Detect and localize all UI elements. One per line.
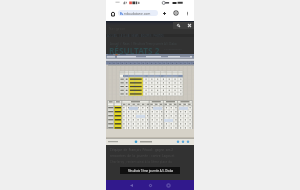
- staticText: L'équipe de François Péaud : gagne ses 2: [110, 148, 173, 152]
- button[interactable]: Tabs: [172, 9, 180, 17]
- button[interactable]: Back: [126, 180, 136, 190]
- staticText: ndaudatane.com: [124, 11, 151, 15]
- staticText: Résultats 7ème journée A.S. Diaba: [128, 169, 173, 173]
- staticText: rencontres de la journée : contre Lagos …: [110, 154, 175, 158]
- button[interactable]: Home: [108, 9, 117, 18]
- staticText: RÉSULTATS 2: [109, 45, 160, 56]
- button[interactable]: Close: [185, 21, 193, 29]
- button[interactable]: More options: [183, 9, 191, 17]
- staticText: ACCUEIL LE CLUB NEWS EQUIPES PHOTOS: [107, 34, 164, 37]
- button[interactable]: Home: [145, 180, 155, 190]
- button[interactable]: ndaudatane.com: [118, 10, 158, 16]
- staticText: Accueil / News / Résultats 7ème journée …: [110, 42, 177, 46]
- staticText: Charleroy , revient ainsi à la 3ème plac…: [110, 160, 172, 164]
- button[interactable]: Résultats 7ème journée A.S. Diaba: [120, 167, 180, 174]
- button[interactable]: New tab: [160, 9, 168, 17]
- button[interactable]: Recents: [163, 180, 173, 190]
- button[interactable]: Search: [174, 21, 182, 29]
